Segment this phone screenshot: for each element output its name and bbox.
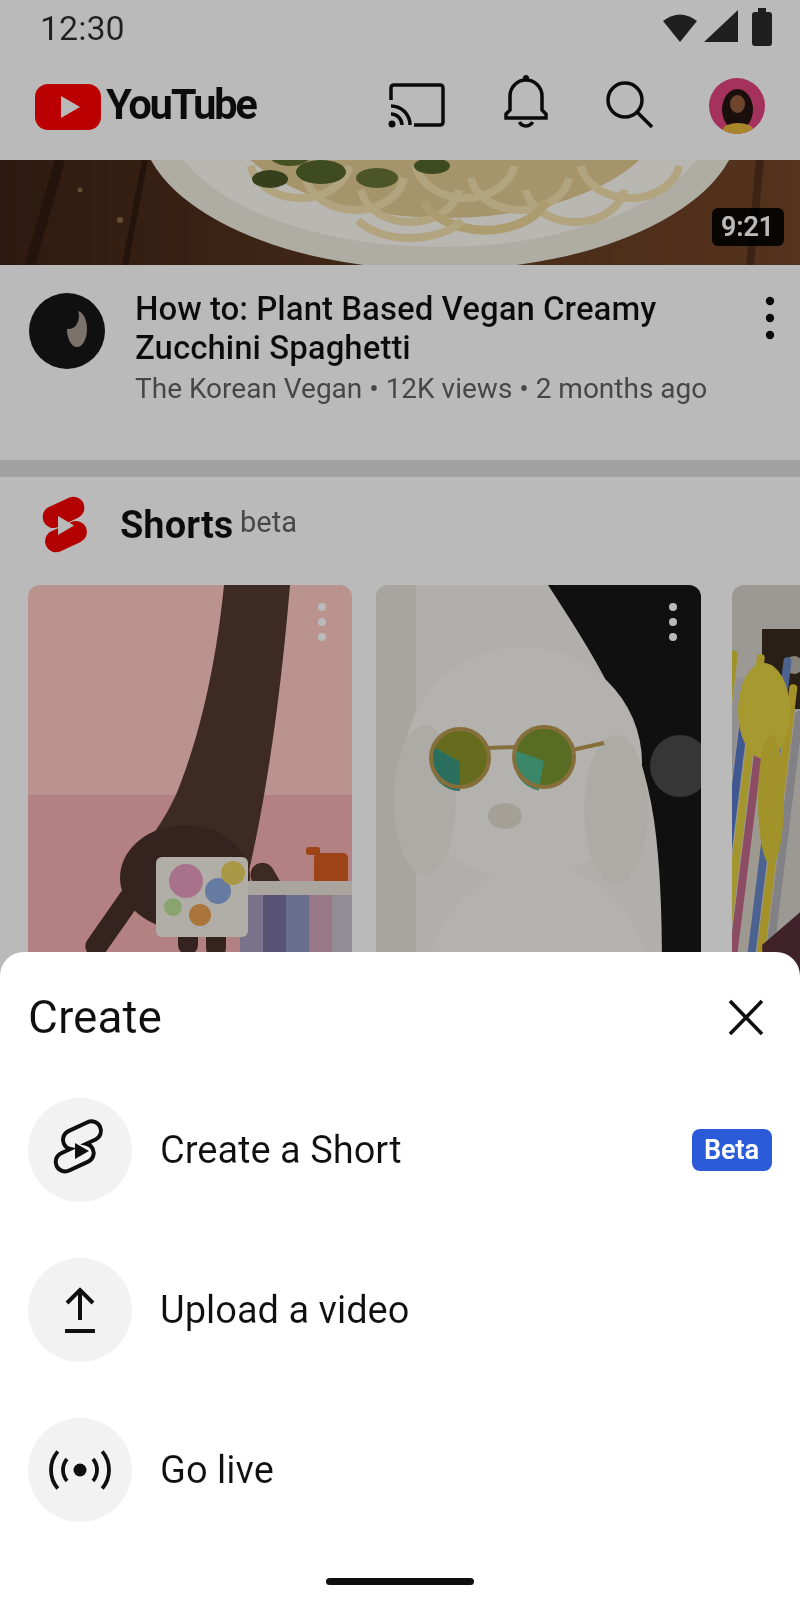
button[interactable]: [602, 78, 658, 134]
staticText: Go live: [160, 1448, 274, 1493]
button[interactable]: 9:21: [0, 160, 800, 265]
staticText: Create: [28, 990, 162, 1044]
button[interactable]: [709, 78, 765, 134]
button[interactable]: [744, 289, 796, 345]
button[interactable]: Go live: [0, 1390, 800, 1550]
button[interactable]: Upload a video: [0, 1230, 800, 1390]
button[interactable]: [732, 585, 800, 1161]
staticText: beta: [240, 505, 297, 539]
button[interactable]: [498, 76, 554, 136]
staticText: Upload a video: [160, 1288, 410, 1333]
staticText: Zucchini Spaghetti: [135, 328, 411, 367]
staticText: Beta: [704, 1134, 760, 1166]
staticText: 9:21: [721, 211, 775, 243]
staticText: The Korean Vegan • 12K views • 2 months …: [135, 372, 708, 405]
staticText: 12:30: [40, 8, 125, 48]
button[interactable]: Create a Short: [0, 1070, 800, 1230]
button[interactable]: [386, 78, 446, 134]
button[interactable]: [706, 977, 786, 1057]
button[interactable]: [28, 585, 352, 1161]
staticText: Shorts: [120, 503, 234, 548]
button[interactable]: How to: Plant Based Vegan Creamy: [0, 265, 800, 460]
staticText: YouTube: [106, 80, 256, 129]
staticText: How to: Plant Based Vegan Creamy: [135, 289, 657, 328]
button[interactable]: [376, 585, 701, 1161]
button[interactable]: [35, 84, 101, 130]
staticText: Create a Short: [160, 1128, 402, 1173]
